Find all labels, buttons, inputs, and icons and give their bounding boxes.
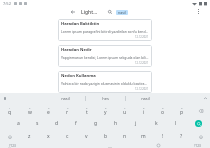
button[interactable]: m <box>134 130 153 143</box>
staticText: g <box>94 120 98 127</box>
button[interactable]: ?123 <box>0 144 24 147</box>
button[interactable]: v <box>77 130 96 143</box>
staticText: Haradan Baktiktin <box>61 21 100 27</box>
staticText: b <box>104 133 108 140</box>
staticText: 7:52 <box>3 1 11 6</box>
staticText: 12.12.2021 <box>135 35 149 39</box>
staticText: ? <box>180 133 183 140</box>
button[interactable]: 0 <box>172 104 191 117</box>
button[interactable]: nasil <box>126 93 165 104</box>
button[interactable]: hes <box>86 93 125 104</box>
button[interactable]: z <box>20 130 39 143</box>
button[interactable]: 5 <box>77 104 96 117</box>
staticText: o <box>161 109 165 116</box>
button[interactable]: Delete <box>191 130 210 143</box>
staticText: i <box>143 109 145 116</box>
staticText: f <box>75 120 77 127</box>
staticText: e <box>47 109 50 116</box>
staticText: 9 <box>162 106 164 109</box>
staticText: 5 <box>86 106 88 109</box>
button[interactable]: Search <box>106 8 114 16</box>
button[interactable]: 8 <box>134 104 153 117</box>
staticText: u <box>123 109 127 116</box>
staticText: v <box>85 133 88 140</box>
staticText: ?123 <box>194 144 201 147</box>
button[interactable]: Shift <box>0 130 20 143</box>
button[interactable]: s <box>28 117 47 130</box>
staticText: r <box>66 109 69 116</box>
staticText: nasil <box>141 96 150 101</box>
button[interactable]: Backspace <box>191 104 210 117</box>
button[interactable]: g <box>86 117 106 130</box>
staticText: Lorem ipsum paragrafini bitirdi yazdiril… <box>61 29 149 34</box>
button[interactable]: Enter <box>186 117 210 130</box>
staticText: h <box>114 120 118 127</box>
staticText: hes <box>102 96 109 101</box>
button[interactable]: 7 <box>115 104 134 117</box>
staticText: ?123 <box>9 144 16 147</box>
button[interactable]: 4 <box>58 104 77 117</box>
staticText: t <box>86 109 88 116</box>
staticText: l <box>175 120 177 127</box>
staticText: 12.12.2021 <box>135 61 149 65</box>
button[interactable]: x <box>39 130 58 143</box>
button[interactable]: Emoji <box>149 144 167 147</box>
button[interactable]: n <box>115 130 134 143</box>
staticText: z <box>28 133 31 140</box>
button[interactable]: More options <box>194 8 202 16</box>
staticText: 1 <box>9 106 11 109</box>
staticText: y <box>104 109 107 116</box>
button[interactable]: b <box>96 130 115 143</box>
button[interactable]: Nedon Kullanma <box>58 71 152 93</box>
button[interactable]: 2 <box>20 104 39 117</box>
staticText: m <box>141 133 146 140</box>
staticText: 7 <box>124 106 126 109</box>
staticText: 0 <box>181 106 183 109</box>
staticText: c <box>66 133 69 140</box>
staticText: nasil <box>61 96 70 101</box>
button[interactable]: Haradan Nedir <box>58 45 152 67</box>
button[interactable]: Haradan Baktiktin <box>58 19 152 41</box>
staticText: 3 <box>48 106 50 109</box>
button[interactable]: c <box>58 130 77 143</box>
staticText: q <box>8 109 12 116</box>
staticText: 8 <box>143 106 145 109</box>
button[interactable]: nasil <box>46 93 85 104</box>
button[interactable]: l <box>166 117 186 130</box>
button[interactable]: ! <box>153 130 172 143</box>
button[interactable]: ?123 <box>185 144 210 147</box>
button[interactable]: a <box>9 117 28 130</box>
staticText: s <box>36 120 39 127</box>
staticText: nasil <box>118 10 126 15</box>
button[interactable]: k <box>146 117 166 130</box>
button[interactable]: 6 <box>96 104 115 117</box>
button[interactable]: Voice input <box>0 93 10 104</box>
button[interactable]: nasil <box>116 10 128 15</box>
button[interactable]: 9 <box>153 104 172 117</box>
button[interactable]: h <box>106 117 126 130</box>
button[interactable]: j <box>126 117 146 130</box>
staticText: a <box>17 120 20 127</box>
button[interactable]: Expand suggestions <box>200 93 210 104</box>
button[interactable]: 1 <box>0 104 20 117</box>
staticText: n <box>123 133 127 140</box>
staticText: Yapginmanun kendisi, Lorem ipsum sekguda… <box>61 55 149 60</box>
button[interactable]: Back <box>69 8 77 16</box>
staticText: Haradan Nedir <box>61 47 92 53</box>
button[interactable]: d <box>47 117 66 130</box>
button[interactable]: 3 <box>39 104 58 117</box>
staticText: k <box>155 120 158 127</box>
staticText: Nedon Kullanma <box>61 73 96 79</box>
staticText: ! <box>162 133 164 140</box>
staticText: 12.12.2021 <box>135 87 149 91</box>
staticText: Light... <box>81 9 98 16</box>
button[interactable]: f <box>66 117 86 130</box>
staticText: d <box>55 120 59 127</box>
staticText: w <box>28 109 32 116</box>
button[interactable]: ? <box>172 130 191 143</box>
staticText: 6 <box>105 106 107 109</box>
